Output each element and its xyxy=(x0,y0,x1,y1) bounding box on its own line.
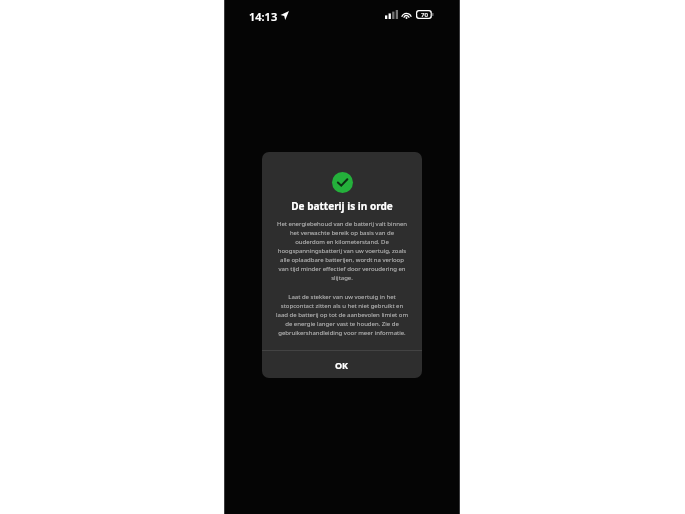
staticText: Laat de stekker van uw voertuig in het s… xyxy=(276,293,408,337)
other: Status goed xyxy=(332,172,353,193)
staticText: 70 xyxy=(421,11,428,19)
staticText: 14:13 xyxy=(249,9,278,24)
button[interactable]: OK xyxy=(262,351,422,378)
staticText: De batterij is in orde xyxy=(291,199,393,213)
staticText: Het energiebehoud van de batterij valt b… xyxy=(276,220,408,282)
staticText: OK xyxy=(335,359,349,371)
